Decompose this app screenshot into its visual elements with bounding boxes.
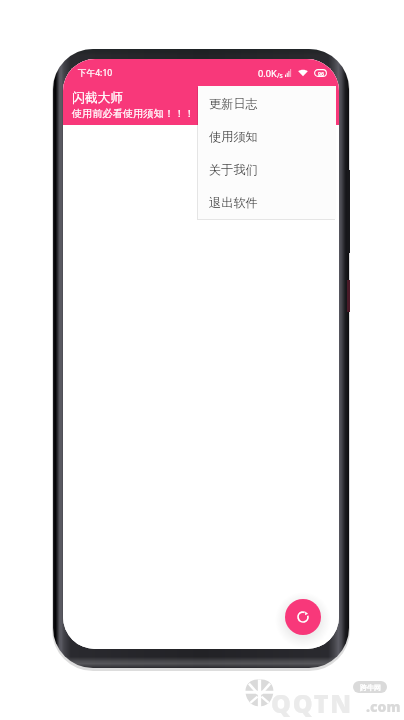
staticText: 闪截大师 xyxy=(72,90,124,106)
staticText: 下午4:10 xyxy=(78,67,113,79)
staticText: 96 xyxy=(318,70,324,77)
staticText: 更新日志 xyxy=(209,96,258,111)
staticText: 使用须知 xyxy=(209,129,258,144)
button[interactable]: Refresh xyxy=(285,599,321,635)
button[interactable]: 关于我们 xyxy=(198,152,336,185)
staticText: 关于我们 xyxy=(209,162,258,177)
staticText: 0.0K xyxy=(258,67,277,80)
button[interactable]: 退出软件 xyxy=(198,185,336,218)
button[interactable]: 使用须知 xyxy=(198,119,336,152)
staticText: 使用前必看使用须知！！！ xyxy=(72,107,195,120)
staticText: 跨牛网 xyxy=(360,683,381,692)
staticText: QQTN xyxy=(271,686,353,720)
button[interactable]: 更新日志 xyxy=(198,86,336,119)
staticText: .com xyxy=(366,697,401,716)
staticText: 退出软件 xyxy=(209,195,258,210)
staticText: /s xyxy=(277,71,283,80)
